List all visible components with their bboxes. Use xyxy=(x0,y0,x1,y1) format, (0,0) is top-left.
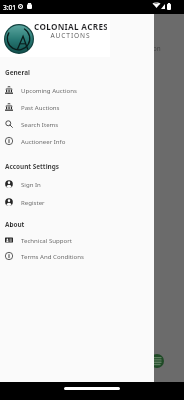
staticText: Register xyxy=(21,198,45,206)
button[interactable]: Register xyxy=(0,193,154,211)
staticText: 3:01 xyxy=(3,3,17,12)
staticText: Past Auctions xyxy=(21,103,60,111)
staticText: Search Items xyxy=(21,120,59,128)
button[interactable]: Past Auctions xyxy=(0,98,154,116)
button[interactable]: Technical Support xyxy=(0,231,154,249)
staticText: General xyxy=(5,68,30,77)
button[interactable]: Terms And Conditions xyxy=(0,247,154,265)
staticText: COLONIAL ACRES xyxy=(34,21,107,32)
staticText: Technical Support xyxy=(21,236,72,244)
staticText: on xyxy=(153,44,161,52)
staticText: Sign In xyxy=(21,180,41,188)
button[interactable]: Search Items xyxy=(0,115,154,133)
button[interactable]: Filter xyxy=(150,354,164,368)
button[interactable]: Sign In xyxy=(0,175,154,193)
staticText: Terms And Conditions xyxy=(21,252,84,260)
staticText: Auctioneer Info xyxy=(21,137,66,145)
staticText: Account Settings xyxy=(5,162,59,171)
button[interactable]: Auctioneer Info xyxy=(0,132,154,150)
staticText: AUCTIONS xyxy=(34,31,107,40)
staticText: Upcoming Auctions xyxy=(21,86,77,94)
button[interactable]: Upcoming Auctions xyxy=(0,81,154,99)
staticText: About xyxy=(5,220,25,229)
